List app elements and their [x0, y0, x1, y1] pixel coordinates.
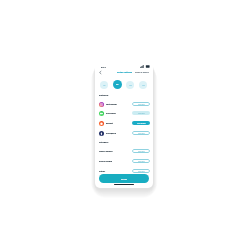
staticText: Reddit — [106, 122, 113, 125]
staticText: Filter Setting — [117, 71, 132, 74]
button[interactable]: LAST 3 DAYS — [135, 71, 149, 74]
button[interactable]: 3D — [113, 80, 122, 89]
button[interactable]: Social Media — [99, 157, 150, 165]
staticText: 9:41 — [101, 65, 106, 68]
staticText: Video Games — [99, 150, 113, 153]
staticText: Reddit — [106, 122, 113, 125]
button[interactable]: Other — [99, 167, 150, 175]
button[interactable]: 1D — [100, 81, 108, 89]
button[interactable]: FaceTime — [99, 109, 150, 117]
button[interactable]: 1W — [126, 81, 134, 89]
staticText: Filter Setting — [117, 71, 132, 74]
staticText: 9:41 — [101, 65, 106, 68]
staticText: Video Games — [99, 150, 113, 153]
staticText: Instagram — [106, 103, 117, 106]
staticText: Platform — [99, 94, 109, 97]
staticText: LAST 3 DAYS — [135, 71, 149, 74]
button[interactable]: Connect — [132, 169, 150, 173]
button[interactable]: Filter Setting — [117, 71, 132, 74]
button[interactable]: Connected — [132, 121, 150, 125]
staticText: Connect — [138, 170, 145, 172]
button[interactable]: Back — [98, 70, 103, 75]
staticText: Social Media — [99, 160, 113, 163]
staticText: Social Media — [99, 160, 113, 163]
staticText: Connect — [138, 112, 145, 114]
staticText: FaceTime — [106, 112, 116, 115]
staticText: Connected — [137, 122, 146, 124]
button[interactable]: Instagram — [99, 100, 150, 108]
staticText: 1W — [129, 84, 132, 87]
staticText: Facebook — [106, 132, 116, 135]
staticText: Platform — [99, 94, 109, 97]
button[interactable]: Reddit — [99, 119, 150, 127]
staticText: Connect — [138, 103, 145, 105]
button[interactable]: Connect — [132, 159, 150, 163]
staticText: Other — [99, 170, 106, 173]
button[interactable]: Connect — [132, 111, 150, 115]
staticText: FaceTime — [106, 112, 116, 115]
button[interactable]: Facebook — [99, 129, 150, 137]
staticText: LAST 3 DAYS — [135, 71, 149, 74]
staticText: 3D — [116, 83, 119, 86]
staticText: Category — [99, 141, 109, 144]
staticText: Facebook — [106, 132, 116, 135]
staticText: SAVE — [121, 177, 127, 180]
staticText: 1M — [142, 84, 145, 87]
staticText: Instagram — [106, 103, 117, 106]
button[interactable]: SAVE — [99, 174, 149, 183]
button[interactable]: Connect — [132, 131, 150, 135]
staticText: Other — [99, 170, 106, 173]
staticText: Category — [99, 141, 109, 144]
button[interactable]: Video Games — [99, 147, 150, 155]
staticText: Connect — [138, 132, 145, 134]
button[interactable]: 1M — [139, 81, 147, 89]
button[interactable]: Connect — [132, 149, 150, 153]
staticText: Connect — [138, 150, 145, 152]
button[interactable]: Connect — [132, 102, 150, 106]
staticText: 1D — [103, 84, 106, 87]
staticText: Connect — [138, 160, 145, 162]
